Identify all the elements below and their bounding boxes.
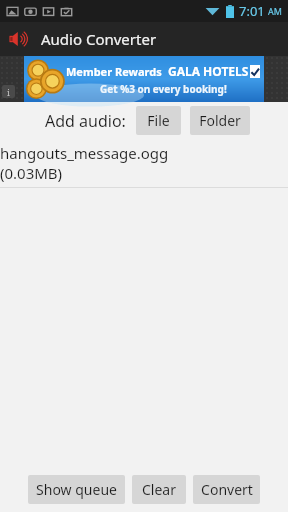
staticText: GALA HOTELS — [168, 63, 249, 79]
button[interactable]: Folder — [190, 106, 250, 135]
button[interactable]: Clear — [132, 475, 186, 504]
staticText: Clear — [142, 480, 176, 499]
button[interactable]: Convert — [193, 475, 260, 504]
other: Audio Converter — [9, 31, 31, 47]
button[interactable]: File — [136, 106, 181, 135]
staticText: Member Rewards — [66, 64, 162, 79]
staticText: Folder — [199, 111, 241, 130]
staticText: File — [147, 111, 170, 130]
staticText: hangouts_message.ogg — [0, 143, 169, 163]
button[interactable]: Show queue — [28, 475, 125, 504]
button[interactable]: hangouts_message.ogg — [0, 141, 288, 187]
staticText: Audio Converter — [41, 29, 157, 49]
staticText: (0.03MB) — [0, 163, 63, 183]
staticText: Add audio: — [45, 110, 126, 132]
staticText: 7:01 — [239, 2, 265, 20]
button[interactable]: Advertisement — [0, 56, 288, 102]
staticText: Convert — [201, 480, 253, 499]
staticText: Get %3 on every booking! — [100, 82, 227, 96]
staticText: Show queue — [36, 480, 117, 499]
staticText: i — [7, 86, 10, 98]
staticText: AM — [268, 5, 282, 17]
button[interactable]: Ad info — [2, 85, 15, 98]
